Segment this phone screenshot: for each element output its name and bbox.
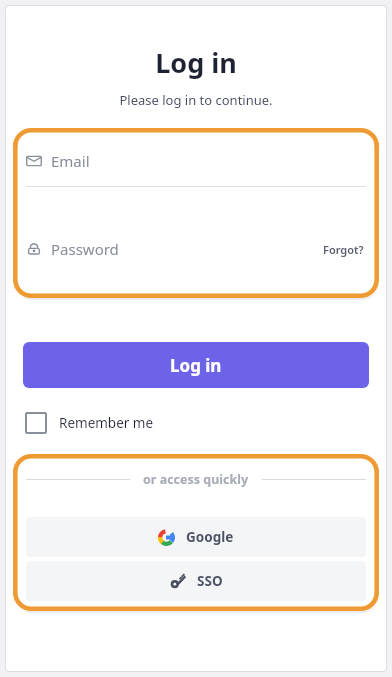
other: Email	[26, 153, 42, 169]
other: Password	[26, 241, 42, 257]
button[interactable]: Forgot?	[321, 239, 366, 260]
button[interactable]: Remember me	[25, 409, 164, 437]
staticText: Forgot?	[323, 242, 364, 257]
staticText: Log in	[6, 44, 386, 81]
staticText: Remember me	[59, 414, 154, 432]
staticText: SSO	[197, 572, 223, 590]
button[interactable]: Email	[26, 145, 366, 177]
button[interactable]: Log in	[23, 342, 369, 388]
staticText: Google	[186, 528, 234, 546]
staticText: Email	[51, 151, 90, 171]
staticText: Password	[51, 239, 119, 259]
staticText: Log in	[170, 354, 222, 377]
button[interactable]: Google	[26, 517, 366, 557]
button[interactable]: Password	[26, 234, 366, 264]
other: Single sign on	[170, 573, 186, 589]
staticText: Please log in to continue.	[6, 91, 386, 109]
button[interactable]: Single sign on	[26, 561, 366, 601]
staticText: or access quickly	[143, 471, 249, 488]
